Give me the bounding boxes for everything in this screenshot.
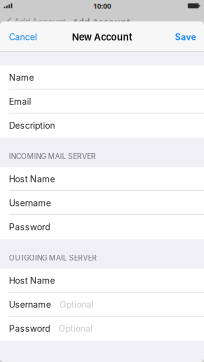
- staticText: Optional: [59, 299, 93, 310]
- button[interactable]: Description: [0, 113, 204, 137]
- staticText: Host Name: [9, 275, 55, 286]
- staticText: Add Account: [14, 17, 66, 27]
- staticText: Password: [9, 222, 50, 232]
- staticText: Password: [9, 323, 50, 334]
- staticText: Save: [175, 32, 196, 42]
- staticText: Username: [9, 198, 51, 208]
- staticText: 10:00: [93, 1, 111, 11]
- staticText: Cancel: [9, 32, 37, 42]
- button[interactable]: Password: [0, 215, 204, 239]
- staticText: New Account: [72, 31, 132, 43]
- staticText: Email: [9, 96, 31, 107]
- staticText: Description: [9, 120, 55, 131]
- button[interactable]: Host Name: [0, 167, 204, 191]
- button[interactable]: Username: [0, 191, 204, 215]
- button[interactable]: Username: [0, 293, 204, 317]
- staticText: Name: [9, 72, 34, 83]
- button[interactable]: Email: [0, 89, 204, 113]
- staticText: OUTGOING MAIL SERVER: [9, 254, 97, 262]
- button[interactable]: Host Name: [0, 269, 204, 293]
- button[interactable]: Cancel: [0, 26, 46, 48]
- staticText: INCOMING MAIL SERVER: [9, 152, 96, 161]
- staticText: Optional: [58, 323, 92, 334]
- button[interactable]: Save: [166, 26, 204, 48]
- button[interactable]: Name: [0, 65, 204, 89]
- staticText: Host Name: [9, 174, 55, 184]
- staticText: Add Account: [73, 16, 131, 28]
- button[interactable]: Password: [0, 317, 204, 341]
- staticText: Username: [9, 299, 51, 310]
